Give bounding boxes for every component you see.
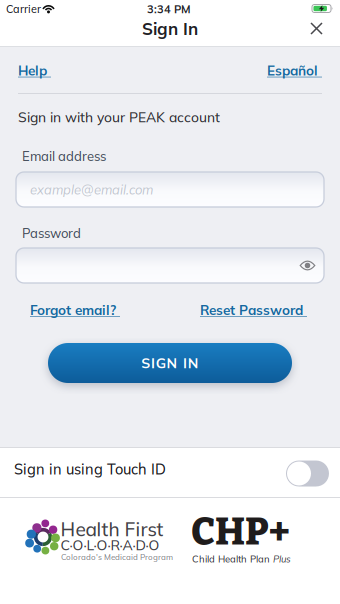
button[interactable]: Forgot email? xyxy=(0,0,340,604)
button[interactable]: SIGN IN xyxy=(48,343,292,383)
staticText: CHP+ xyxy=(191,508,290,555)
button[interactable]: Close xyxy=(302,14,330,42)
staticText: Reset Password xyxy=(200,301,307,318)
staticText: Health First xyxy=(60,517,163,541)
staticText: 3:34 PM xyxy=(147,2,191,16)
button[interactable]: Show password xyxy=(293,252,321,278)
button[interactable]: Password xyxy=(16,248,324,283)
button[interactable]: Español xyxy=(0,0,340,604)
staticText: Colorado's Medicaid Program xyxy=(61,552,173,562)
staticText: SIGN IN xyxy=(141,354,199,372)
staticText: Sign in with your PEAK account xyxy=(18,108,220,126)
staticText: C·O·L·O·R·A·D·O xyxy=(60,536,159,554)
button[interactable]: Email address xyxy=(16,172,324,207)
staticText: Email address xyxy=(22,148,106,164)
staticText: Sign in using Touch ID xyxy=(14,460,166,478)
staticText: Child Health Plan xyxy=(192,553,270,565)
staticText: Sign In xyxy=(142,18,198,39)
staticText: Plus xyxy=(273,553,291,565)
staticText: Carrier xyxy=(6,2,41,16)
staticText: example@email.com xyxy=(30,181,153,198)
staticText: Password xyxy=(22,225,81,241)
button[interactable]: Help xyxy=(0,0,340,604)
button[interactable]: Sign in using Touch ID xyxy=(286,460,329,486)
staticText: Español xyxy=(267,62,322,79)
staticText: Help xyxy=(18,62,51,79)
button[interactable]: Reset Password xyxy=(0,0,340,604)
staticText: Forgot email? xyxy=(30,301,120,318)
